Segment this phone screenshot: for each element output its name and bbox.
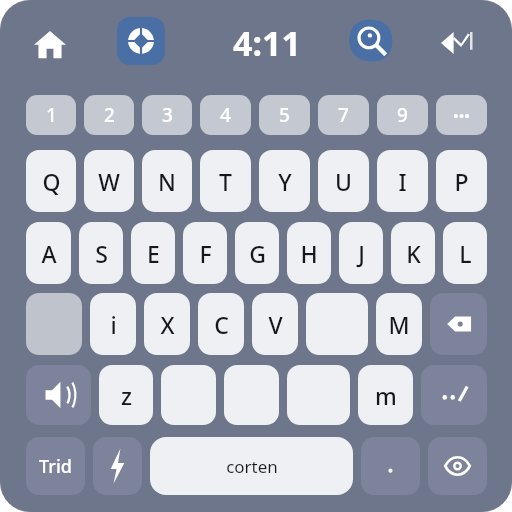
- button[interactable]: M: [376, 293, 422, 355]
- button[interactable]: E: [131, 222, 175, 284]
- staticText: H: [300, 238, 318, 269]
- staticText: z: [121, 380, 132, 411]
- staticText: L: [459, 238, 472, 269]
- staticText: 5: [279, 102, 290, 128]
- staticText: •••: [453, 105, 470, 125]
- button[interactable]: 3: [142, 95, 192, 135]
- staticText: 1: [46, 102, 57, 128]
- button[interactable]: V: [252, 293, 298, 355]
- button[interactable]: Home: [26, 20, 74, 68]
- button[interactable]: T: [200, 150, 251, 212]
- button[interactable]: Navigate: [117, 17, 165, 65]
- button[interactable]: Key: [306, 293, 368, 355]
- button[interactable]: A: [26, 222, 71, 284]
- staticText: C: [214, 309, 229, 340]
- button[interactable]: Y: [259, 150, 310, 212]
- button[interactable]: S: [79, 222, 123, 284]
- staticText: 2: [104, 102, 115, 128]
- button[interactable]: G: [235, 222, 279, 284]
- staticText: A: [41, 238, 57, 269]
- button[interactable]: X: [144, 293, 190, 355]
- button[interactable]: Q: [26, 150, 76, 212]
- button[interactable]: H: [287, 222, 331, 284]
- staticText: K: [406, 238, 421, 269]
- button[interactable]: 4: [200, 95, 251, 135]
- staticText: P: [454, 166, 469, 197]
- staticText: E: [147, 238, 160, 269]
- button[interactable]: 7: [318, 95, 369, 135]
- staticText: 4:11: [233, 20, 301, 66]
- button[interactable]: Key: [287, 365, 350, 425]
- button[interactable]: m: [358, 365, 413, 425]
- button[interactable]: Backspace: [430, 293, 487, 355]
- button[interactable]: i: [90, 293, 136, 355]
- staticText: 9: [397, 102, 408, 128]
- button[interactable]: C: [198, 293, 244, 355]
- staticText: 3: [162, 102, 173, 128]
- button[interactable]: 9: [377, 95, 428, 135]
- staticText: 7: [338, 102, 349, 128]
- staticText: T: [219, 166, 232, 197]
- staticText: Y: [278, 166, 292, 197]
- button[interactable]: Key: [224, 365, 279, 425]
- staticText: N: [158, 166, 176, 197]
- button[interactable]: •••: [436, 95, 487, 135]
- button[interactable]: corten: [150, 437, 353, 495]
- button[interactable]: N: [142, 150, 192, 212]
- button[interactable]: Emoji: [428, 437, 487, 495]
- button[interactable]: P: [436, 150, 487, 212]
- button[interactable]: Shift: [26, 293, 82, 355]
- button[interactable]: Search: [345, 15, 397, 67]
- button[interactable]: J: [339, 222, 383, 284]
- button[interactable]: U: [318, 150, 369, 212]
- button[interactable]: z: [99, 365, 153, 425]
- button[interactable]: K: [391, 222, 435, 284]
- staticText: Trid: [39, 454, 72, 479]
- button[interactable]: 1: [26, 95, 76, 135]
- button[interactable]: I: [377, 150, 428, 212]
- button[interactable]: 2: [84, 95, 134, 135]
- button[interactable]: L: [443, 222, 487, 284]
- staticText: G: [249, 238, 266, 269]
- button[interactable]: W: [84, 150, 134, 212]
- staticText: X: [160, 309, 175, 340]
- button[interactable]: F: [183, 222, 227, 284]
- staticText: I: [398, 166, 407, 197]
- staticText: M: [388, 309, 410, 340]
- staticText: m: [375, 380, 397, 411]
- staticText: W: [98, 166, 120, 197]
- staticText: J: [358, 238, 365, 269]
- staticText: i: [110, 309, 117, 340]
- button[interactable]: Back: [432, 18, 482, 68]
- staticText: 4: [220, 102, 231, 128]
- staticText: U: [335, 166, 352, 197]
- staticText: V: [268, 309, 283, 340]
- button[interactable]: Key: [161, 365, 216, 425]
- button[interactable]: Quick action: [93, 437, 142, 495]
- button[interactable]: 5: [259, 95, 310, 135]
- staticText: corten: [226, 455, 278, 478]
- button[interactable]: Volume: [26, 365, 91, 425]
- staticText: F: [199, 238, 212, 269]
- button[interactable]: Period: [361, 437, 420, 495]
- button[interactable]: More: [421, 365, 487, 425]
- staticText: S: [95, 238, 108, 269]
- button[interactable]: Trid: [26, 437, 85, 495]
- staticText: Q: [42, 166, 61, 197]
